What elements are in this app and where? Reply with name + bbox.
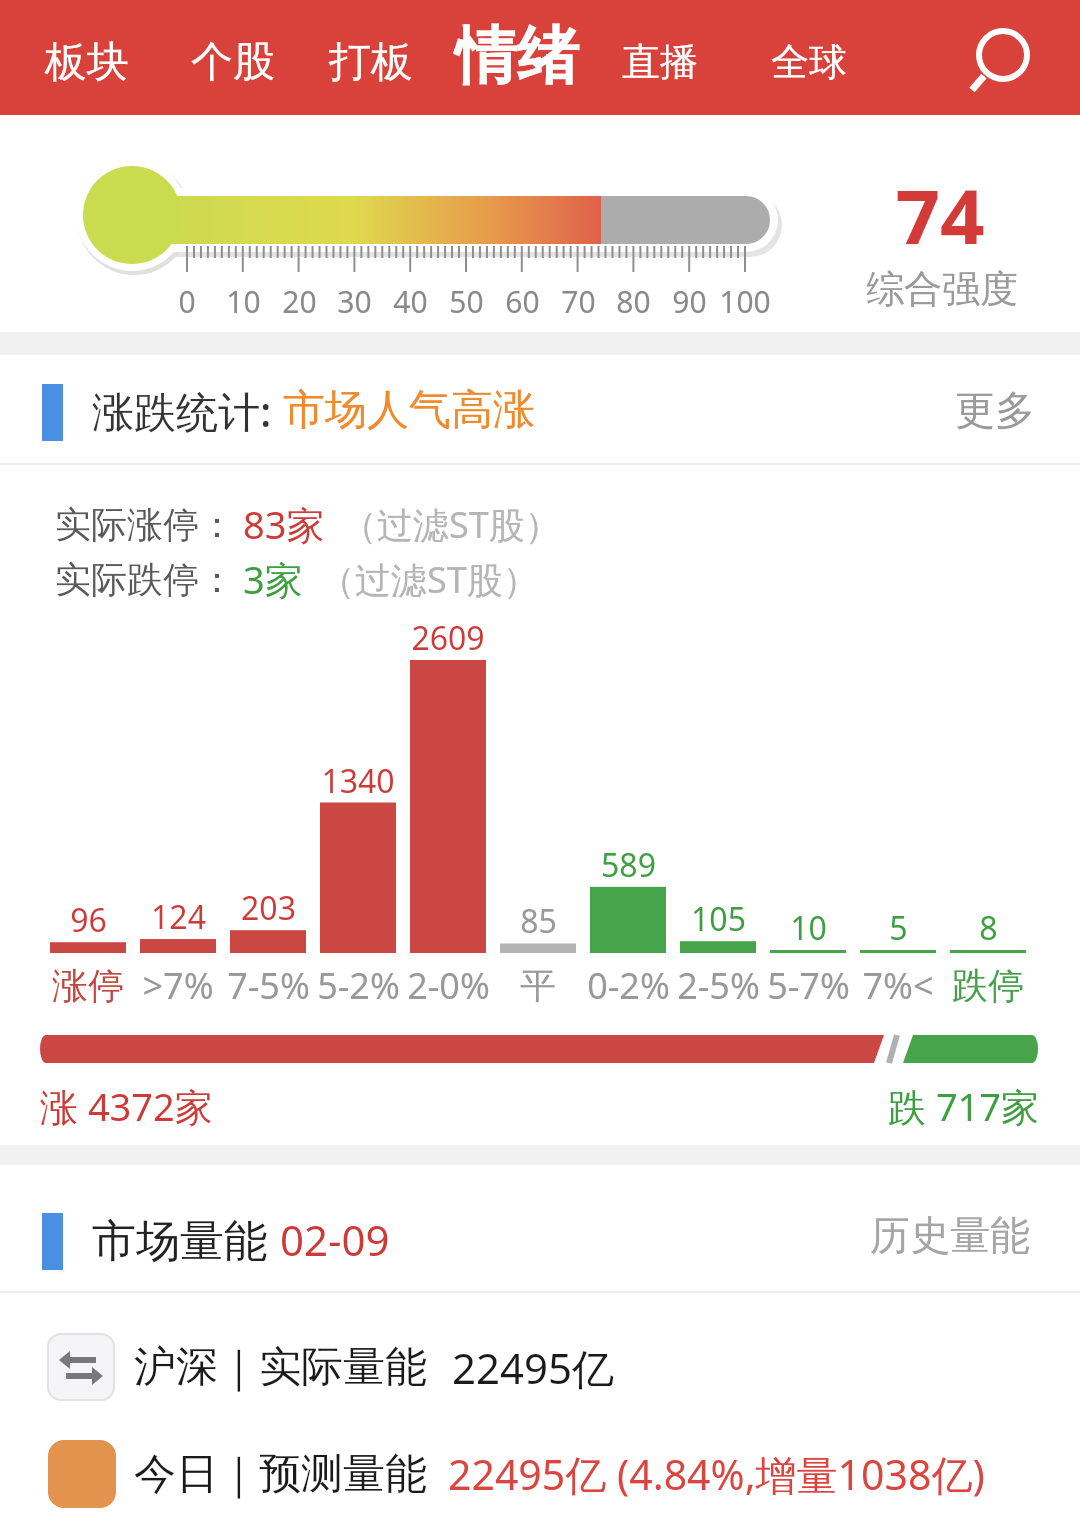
staticText: （过滤ST股） [341,500,561,549]
staticText: 沪深｜实际量能 [134,1341,428,1394]
button[interactable] [960,15,1050,105]
button[interactable]: 情绪 [442,13,592,99]
staticText: 80 [616,281,651,322]
staticText: 7%< [862,961,934,1010]
staticText: 情绪 [455,17,579,95]
staticText: 7-5% [227,961,310,1010]
staticText: 打板 [329,36,413,89]
button[interactable]: 个股 [178,24,288,100]
staticText: 2609 [411,616,485,660]
staticText: 22495亿 (4.84%,增量1038亿) [448,1446,985,1502]
staticText: 综合强度 [866,265,1018,313]
staticText: 直播 [622,38,698,86]
staticText: 10 [790,906,827,950]
staticText: 3家 [243,553,303,605]
staticText: 历史量能 [870,1210,1030,1260]
staticText: 涨跌统计: [92,382,283,439]
button[interactable]: 全球 [754,24,864,100]
staticText: 更多 [955,385,1035,435]
staticText: 板块 [45,36,129,89]
staticText: 8 [979,906,998,950]
staticText: 105 [691,897,746,941]
button[interactable]: 板块 [32,24,142,100]
staticText: 2-5% [677,961,760,1010]
staticText: >7% [142,961,214,1010]
staticText: 涨停 [52,963,124,1008]
staticText: 02-09 [280,1211,390,1268]
staticText: 589 [601,843,656,887]
button[interactable]: 历史量能 [850,1195,1050,1275]
staticText: 跌 717家 [888,1080,1040,1132]
staticText: 90 [672,281,707,322]
staticText: 85 [520,899,557,943]
button[interactable]: 沪深｜实际量能 [48,1334,1048,1400]
button[interactable]: 打板 [316,24,426,100]
staticText: 100 [719,281,771,322]
staticText: 跌停 [952,963,1024,1008]
staticText: 5-2% [317,961,400,1010]
staticText: 50 [449,281,484,322]
staticText: 83家 [243,498,325,550]
staticText: 203 [241,886,296,930]
staticText: 实际涨停： [55,502,235,547]
staticText: 2-0% [407,961,490,1010]
staticText: 5 [889,906,908,950]
staticText: 124 [151,895,206,939]
staticText: 74 [895,164,985,244]
staticText: 70 [561,281,596,322]
staticText: 1340 [321,759,395,803]
button[interactable]: 直播 [605,24,715,100]
button[interactable]: 今日｜预测量能 [48,1440,1048,1508]
staticText: 30 [337,281,372,322]
staticText: 5-7% [767,961,850,1010]
staticText: 市场人气高涨 [283,384,535,437]
button[interactable]: 更多 [935,370,1055,450]
staticText: 全球 [771,38,847,86]
staticText: 22495亿 [452,1339,615,1396]
staticText: 市场量能 [92,1209,280,1269]
staticText: 10 [226,281,261,322]
staticText: 平 [520,963,556,1008]
staticText: 60 [505,281,540,322]
staticText: 40 [393,281,428,322]
staticText: 个股 [191,36,275,89]
staticText: 96 [70,898,107,942]
staticText: 0-2% [587,961,670,1010]
staticText: 实际跌停： [55,557,235,602]
staticText: （过滤ST股） [319,555,539,604]
staticText: 今日｜预测量能 [134,1448,428,1501]
staticText: 0 [178,281,196,322]
staticText: 涨 4372家 [40,1080,213,1132]
staticText: 20 [282,281,317,322]
